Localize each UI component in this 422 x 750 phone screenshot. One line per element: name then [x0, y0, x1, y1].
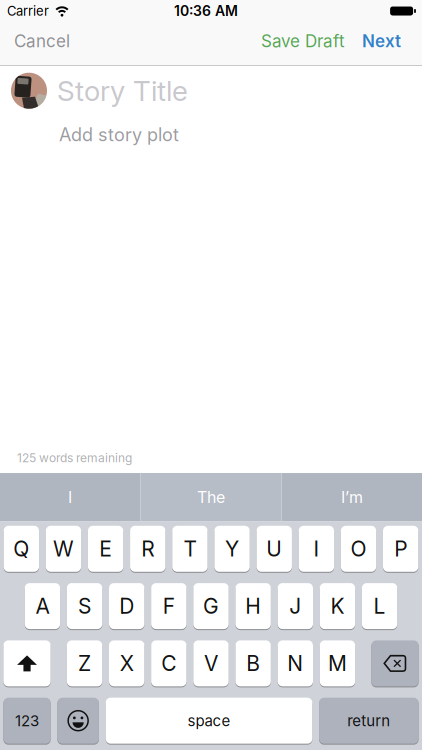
staticText: C: [161, 651, 176, 676]
button[interactable]: Y: [214, 526, 250, 572]
button[interactable]: F: [151, 583, 187, 629]
button[interactable]: N: [278, 640, 313, 686]
staticText: V: [204, 651, 218, 676]
staticText: Save Draft: [261, 31, 345, 51]
staticText: Cancel: [14, 31, 70, 51]
button[interactable]: Space: [106, 698, 312, 744]
button[interactable]: Next: [362, 31, 401, 51]
button[interactable]: K: [320, 583, 355, 629]
button[interactable]: I: [299, 526, 334, 572]
button[interactable]: Q: [4, 526, 39, 572]
staticText: return: [347, 712, 390, 730]
button[interactable]: O: [341, 526, 376, 572]
button[interactable]: E: [88, 526, 123, 572]
staticText: O: [350, 536, 366, 561]
button[interactable]: X: [109, 640, 144, 686]
button[interactable]: P: [383, 526, 418, 572]
staticText: R: [141, 536, 154, 561]
staticText: U: [266, 536, 282, 561]
staticText: G: [203, 593, 219, 619]
button[interactable]: I: [0, 473, 140, 521]
staticText: Carrier: [7, 3, 49, 19]
staticText: D: [119, 593, 134, 619]
staticText: Add story plot: [59, 124, 179, 145]
button[interactable]: Shift: [3, 640, 51, 686]
staticText: N: [287, 651, 303, 676]
button[interactable]: J: [278, 583, 313, 629]
button[interactable]: Numbers: [3, 698, 51, 744]
staticText: Next: [362, 31, 401, 51]
staticText: J: [289, 593, 301, 619]
button[interactable]: Return: [319, 698, 419, 744]
staticText: E: [99, 536, 112, 561]
button[interactable]: The: [141, 473, 281, 521]
staticText: 10:36 AM: [174, 2, 238, 19]
button[interactable]: Save Draft: [261, 31, 345, 51]
staticText: Y: [225, 536, 239, 561]
button[interactable]: T: [172, 526, 208, 572]
staticText: Q: [13, 536, 29, 561]
staticText: H: [245, 593, 261, 619]
staticText: 123: [15, 712, 39, 730]
staticText: A: [35, 593, 49, 619]
staticText: P: [394, 536, 407, 561]
button[interactable]: C: [151, 640, 186, 686]
staticText: The: [197, 487, 225, 507]
button[interactable]: A: [25, 583, 60, 629]
staticText: Z: [78, 651, 91, 676]
button[interactable]: D: [109, 583, 144, 629]
staticText: space: [187, 712, 230, 730]
button[interactable]: R: [130, 526, 165, 572]
button[interactable]: W: [46, 526, 81, 572]
staticText: X: [120, 651, 134, 676]
staticText: F: [163, 593, 175, 619]
staticText: I: [68, 487, 72, 507]
staticText: B: [246, 651, 260, 676]
button[interactable]: M: [320, 640, 355, 686]
button[interactable]: V: [193, 640, 229, 686]
button[interactable]: Cancel: [14, 31, 70, 51]
staticText: T: [183, 536, 196, 561]
staticText: Story Title: [57, 74, 188, 108]
button[interactable]: L: [362, 583, 397, 629]
button[interactable]: Z: [67, 640, 102, 686]
button[interactable]: H: [235, 583, 271, 629]
button[interactable]: Emoji: [57, 698, 99, 744]
button[interactable]: G: [193, 583, 229, 629]
button[interactable]: U: [256, 526, 292, 572]
button[interactable]: I’m: [282, 473, 422, 521]
staticText: I’m: [341, 487, 363, 507]
staticText: M: [328, 651, 347, 676]
button[interactable]: S: [67, 583, 102, 629]
button[interactable]: B: [235, 640, 271, 686]
staticText: W: [53, 536, 74, 561]
staticText: S: [78, 593, 91, 619]
button[interactable]: Delete: [371, 640, 418, 686]
staticText: 125 words remaining: [17, 451, 132, 465]
staticText: K: [330, 593, 344, 619]
button[interactable]: Story photo: [11, 73, 47, 109]
staticText: L: [374, 593, 386, 619]
staticText: I: [313, 536, 319, 561]
